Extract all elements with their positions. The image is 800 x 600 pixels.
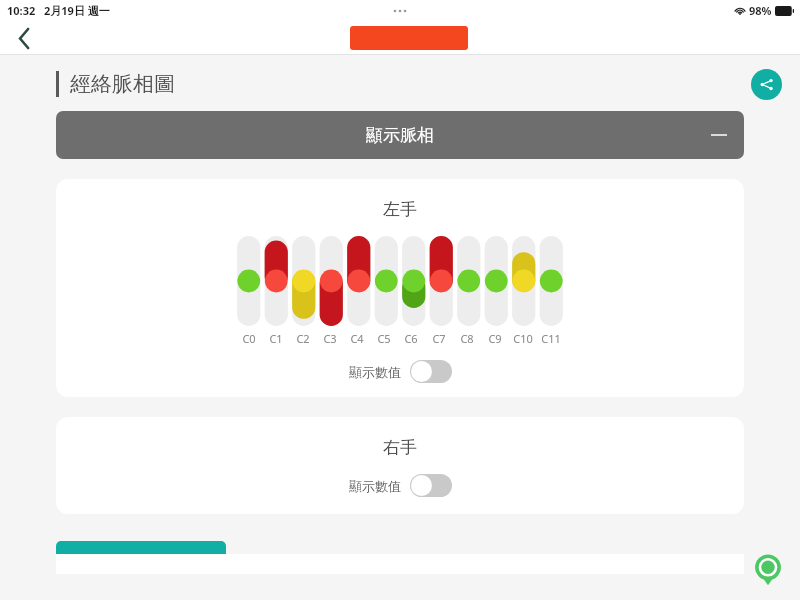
staticText: 右手 [383, 437, 417, 458]
staticText: C7 [432, 331, 446, 346]
staticText: C3 [323, 331, 337, 346]
staticText: C1 [269, 331, 283, 346]
staticText: 顯示數值 [349, 364, 401, 380]
staticText: 98% [749, 3, 772, 18]
staticText: 10:32 [7, 3, 36, 18]
button[interactable]: 顯示脈相 [56, 111, 744, 159]
staticText: 經絡脈相圖 [70, 71, 175, 97]
staticText: C2 [296, 331, 310, 346]
staticText: C4 [350, 331, 364, 346]
button[interactable]: Back [8, 22, 40, 54]
button[interactable]: Show values toggle [410, 360, 452, 383]
staticText: C6 [404, 331, 418, 346]
staticText: C10 [513, 331, 533, 346]
staticText: 顯示脈相 [366, 125, 434, 146]
staticText: C0 [242, 331, 256, 346]
button[interactable]: Share [751, 69, 782, 100]
staticText: 左手 [383, 199, 417, 220]
staticText: 顯示數值 [349, 478, 401, 494]
button[interactable]: Show values toggle [410, 474, 452, 497]
staticText: C11 [541, 331, 561, 346]
staticText: C5 [377, 331, 391, 346]
button[interactable]: LINE [751, 552, 785, 586]
staticText: C8 [460, 331, 474, 346]
staticText: 2月19日 週一 [44, 3, 110, 18]
staticText: C9 [488, 331, 502, 346]
button[interactable] [56, 541, 226, 554]
